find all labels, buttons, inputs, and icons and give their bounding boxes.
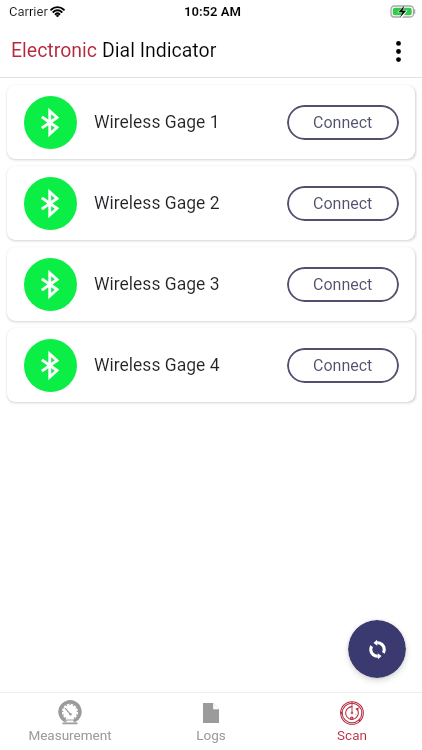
button[interactable]: Connect [287,105,399,140]
staticText: Connect [313,275,373,294]
button[interactable]: Wireless Gage 1 [7,85,415,159]
button[interactable]: Measurement [0,693,140,750]
button[interactable]: Wireless Gage 3 [7,247,415,321]
staticText: Connect [313,113,373,132]
button[interactable]: Wireless Gage 2 [7,166,415,240]
staticText: Connect [313,356,373,375]
button[interactable]: More options [374,27,422,75]
staticText: Measurement [28,727,112,743]
button[interactable]: Connect [287,186,399,221]
button[interactable]: Refresh scan [348,620,406,678]
button[interactable]: Connect [287,267,399,302]
staticText: Wireless Gage 2 [94,193,220,214]
button[interactable]: Scan [281,693,422,750]
staticText: Logs [196,727,226,743]
staticText: Electronic [11,39,102,62]
staticText: Carrier [9,4,48,19]
staticText: 10:52 AM [184,4,241,19]
staticText: Scan [337,727,367,743]
button[interactable]: Wireless Gage 4 [7,328,415,402]
staticText: Wireless Gage 4 [94,355,220,376]
staticText: Wireless Gage 3 [94,274,220,295]
staticText: Connect [313,194,373,213]
button[interactable]: Logs [140,693,281,750]
staticText: Dial Indicator [102,39,217,62]
staticText: Wireless Gage 1 [94,112,220,133]
button[interactable]: Connect [287,348,399,383]
